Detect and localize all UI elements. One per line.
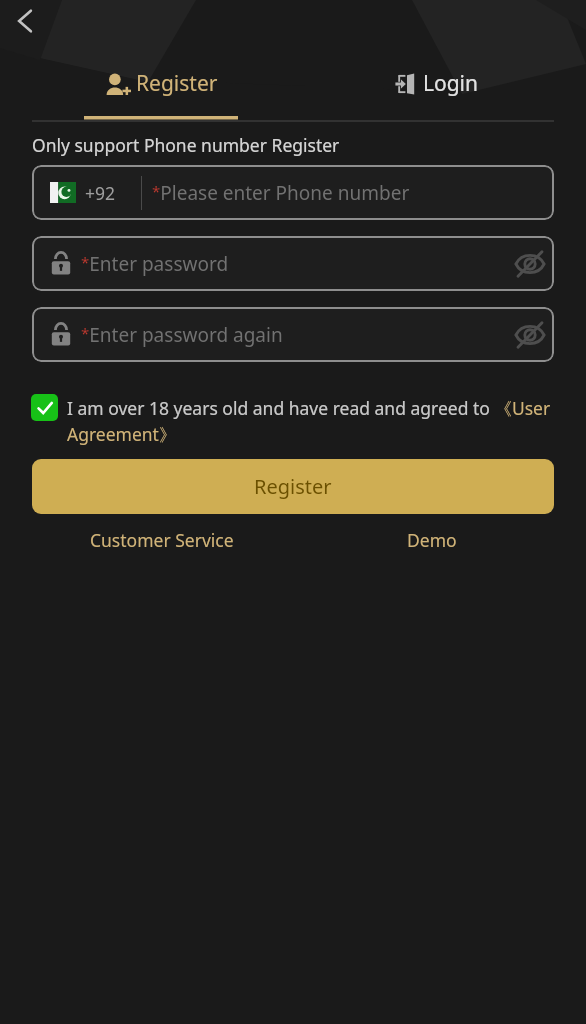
button[interactable]: Show password bbox=[508, 313, 552, 357]
staticText: Register bbox=[254, 473, 332, 500]
staticText: *Enter password bbox=[81, 251, 229, 277]
button[interactable]: Login bbox=[293, 42, 586, 122]
staticText: Customer Service bbox=[90, 528, 234, 552]
button[interactable]: +92 bbox=[32, 165, 554, 220]
button[interactable]: Customer Service bbox=[22, 528, 302, 552]
staticText: Only support Phone number Register bbox=[32, 133, 340, 157]
staticText: *Please enter Phone number bbox=[152, 180, 410, 206]
staticText: I am over 18 years old and have read and… bbox=[67, 396, 564, 447]
button[interactable]: Agree checkbox bbox=[31, 394, 58, 421]
staticText: *Enter password again bbox=[81, 322, 283, 348]
button[interactable]: *Enter password bbox=[32, 236, 554, 291]
button[interactable]: Register bbox=[0, 42, 293, 122]
button[interactable]: Demo bbox=[302, 528, 562, 552]
button[interactable]: Register bbox=[32, 459, 554, 514]
staticText: Login bbox=[423, 69, 479, 98]
staticText: +92 bbox=[85, 181, 116, 205]
button[interactable]: Show password bbox=[508, 242, 552, 286]
button[interactable]: Back bbox=[0, 0, 50, 42]
button[interactable]: *Enter password again bbox=[32, 307, 554, 362]
staticText: Register bbox=[136, 69, 218, 98]
staticText: Demo bbox=[407, 528, 457, 552]
